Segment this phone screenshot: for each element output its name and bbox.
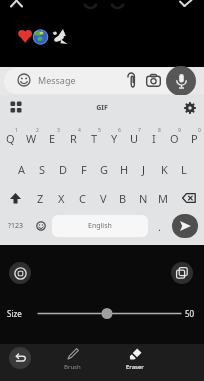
staticText: Size <box>7 308 22 319</box>
button[interactable]: K <box>154 156 174 182</box>
button[interactable]: Z <box>30 185 51 211</box>
staticText: G <box>100 162 109 177</box>
staticText: H <box>120 162 129 177</box>
button[interactable]: GIF <box>0 103 204 113</box>
staticText: C <box>79 191 86 206</box>
staticText: B <box>119 191 127 206</box>
staticText: M <box>158 191 168 206</box>
staticText: 7 <box>138 127 141 134</box>
button[interactable]: V <box>93 185 113 211</box>
button[interactable] <box>10 101 22 113</box>
staticText: D <box>59 162 68 177</box>
button[interactable] <box>172 214 198 238</box>
button[interactable] <box>166 66 196 96</box>
button[interactable] <box>0 185 30 211</box>
staticText: 5 <box>98 127 101 134</box>
button[interactable]: B <box>113 185 133 211</box>
staticText: V <box>100 191 107 206</box>
staticText: A <box>18 162 26 177</box>
button[interactable]: S <box>32 156 53 182</box>
button[interactable] <box>31 213 51 239</box>
staticText: E <box>49 131 56 146</box>
button[interactable]: E <box>42 125 63 151</box>
button[interactable]: Y <box>104 125 124 151</box>
staticText: 50 <box>185 308 195 319</box>
staticText: Eraser <box>126 363 144 371</box>
button[interactable]: P <box>184 125 204 151</box>
button[interactable]: T <box>84 125 104 151</box>
staticText: T <box>91 131 98 146</box>
staticText: R <box>70 131 77 146</box>
button[interactable]: Q <box>0 125 21 151</box>
button[interactable] <box>9 262 31 284</box>
button[interactable] <box>9 347 31 369</box>
staticText: 4 <box>78 127 81 134</box>
button[interactable]: R <box>63 125 84 151</box>
button[interactable] <box>173 185 204 211</box>
staticText: Z <box>37 191 44 206</box>
staticText: 2 <box>36 127 39 134</box>
staticText: P <box>191 131 198 146</box>
button[interactable]: O <box>164 125 184 151</box>
staticText: J <box>142 162 146 177</box>
button[interactable]: U <box>124 125 144 151</box>
button[interactable]: X <box>51 185 72 211</box>
staticText: I <box>152 131 156 146</box>
staticText: K <box>161 162 168 177</box>
staticText: 3 <box>57 127 60 134</box>
button[interactable] <box>171 262 193 284</box>
button[interactable] <box>4 68 195 94</box>
button[interactable] <box>38 307 181 320</box>
button[interactable]: W <box>21 125 42 151</box>
button[interactable] <box>184 102 196 114</box>
button[interactable]: N <box>133 185 153 211</box>
staticText: Message <box>38 74 76 86</box>
button[interactable]: L <box>174 156 194 182</box>
button[interactable] <box>146 74 161 87</box>
button[interactable] <box>9 0 25 9</box>
button[interactable]: D <box>53 156 74 182</box>
button[interactable]: H <box>114 156 134 182</box>
staticText: English <box>88 221 112 231</box>
staticText: Y <box>111 131 118 146</box>
staticText: 6 <box>118 127 121 134</box>
staticText: O <box>170 131 179 146</box>
button[interactable]: ?123 <box>0 213 31 239</box>
staticText: U <box>130 131 139 146</box>
button[interactable]: Eraser <box>119 345 151 380</box>
button[interactable]: G <box>94 156 114 182</box>
button[interactable] <box>178 0 194 9</box>
staticText: W <box>26 131 37 146</box>
staticText: . <box>158 219 161 234</box>
staticText: L <box>181 162 187 177</box>
button[interactable] <box>125 72 137 89</box>
staticText: N <box>139 191 148 206</box>
button[interactable]: . <box>150 213 168 239</box>
staticText: Q <box>6 131 15 146</box>
staticText: F <box>81 162 87 177</box>
button[interactable]: M <box>153 185 173 211</box>
button[interactable]: J <box>134 156 154 182</box>
staticText: 8 <box>158 127 161 134</box>
button[interactable]: F <box>74 156 94 182</box>
staticText: 1 <box>15 127 18 134</box>
button[interactable]: C <box>72 185 93 211</box>
staticText: 0 <box>198 127 201 134</box>
staticText: 9 <box>178 127 181 134</box>
button[interactable]: I <box>144 125 164 151</box>
staticText: X <box>58 191 65 206</box>
button[interactable]: Brush <box>56 345 88 380</box>
staticText: Brush <box>64 363 81 371</box>
button[interactable]: A <box>11 156 32 182</box>
button[interactable]: English <box>52 215 148 237</box>
staticText: ?123 <box>8 221 24 231</box>
staticText: S <box>39 162 46 177</box>
